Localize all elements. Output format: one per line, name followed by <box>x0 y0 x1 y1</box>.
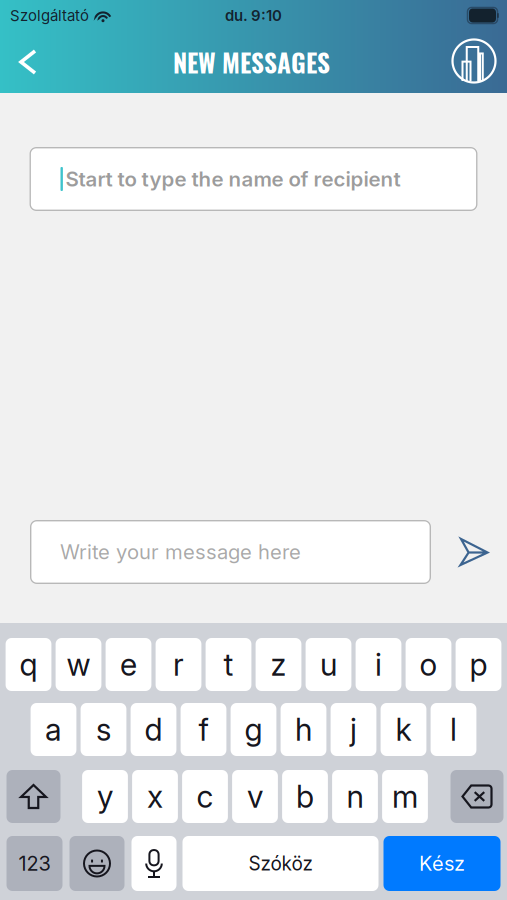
button[interactable]: Back <box>0 31 56 93</box>
button[interactable]: 123 <box>6 836 62 891</box>
staticText: y <box>97 778 113 815</box>
staticText: Start to type the name of recipient <box>65 167 400 191</box>
staticText: v <box>247 778 263 815</box>
staticText: a <box>45 711 62 748</box>
button[interactable]: h <box>281 703 326 756</box>
button[interactable]: t <box>206 638 251 691</box>
staticText: p <box>469 646 487 683</box>
staticText: w <box>66 646 90 683</box>
staticText: u <box>320 646 337 683</box>
staticText: g <box>244 711 262 748</box>
staticText: x <box>147 778 163 815</box>
button[interactable]: Emoji <box>69 836 124 891</box>
staticText: o <box>419 646 437 683</box>
staticText: j <box>350 711 357 748</box>
button[interactable]: b <box>282 770 328 823</box>
staticText: du. 9:10 <box>225 6 282 25</box>
button[interactable]: v <box>232 770 278 823</box>
staticText: Szóköz <box>248 852 312 875</box>
staticText: Write your message here <box>60 540 301 564</box>
staticText: f <box>198 711 208 748</box>
button[interactable]: n <box>332 770 378 823</box>
button[interactable]: Send <box>453 520 499 584</box>
button[interactable]: c <box>182 770 228 823</box>
button[interactable]: Shift <box>6 770 60 823</box>
button[interactable]: Kész <box>383 836 500 891</box>
staticText: s <box>96 711 111 748</box>
button[interactable]: q <box>6 638 51 691</box>
button[interactable]: k <box>381 703 426 756</box>
staticText: NEW MESSAGES <box>173 43 330 81</box>
button[interactable]: Szóköz <box>182 836 378 891</box>
button[interactable]: m <box>382 770 428 823</box>
staticText: 123 <box>18 851 50 876</box>
button[interactable]: r <box>156 638 201 691</box>
staticText: h <box>295 711 312 748</box>
staticText: t <box>223 646 233 683</box>
button[interactable]: App logo <box>447 31 507 93</box>
button[interactable]: p <box>456 638 501 691</box>
button[interactable]: a <box>31 703 76 756</box>
button[interactable]: Backspace <box>450 770 503 823</box>
button[interactable]: o <box>406 638 451 691</box>
staticText: l <box>450 711 457 748</box>
button[interactable]: i <box>356 638 401 691</box>
staticText: i <box>375 646 382 683</box>
button[interactable]: l <box>431 703 476 756</box>
staticText: k <box>395 711 411 748</box>
button[interactable]: j <box>331 703 376 756</box>
staticText: m <box>392 778 418 815</box>
staticText: e <box>120 646 137 683</box>
staticText: c <box>196 778 213 815</box>
button[interactable]: e <box>106 638 151 691</box>
staticText: z <box>270 646 286 683</box>
staticText: Kész <box>419 851 465 876</box>
button[interactable]: z <box>256 638 301 691</box>
button[interactable]: Write your message here <box>30 520 431 584</box>
button[interactable]: Start to type the name of recipient <box>29 147 477 211</box>
button[interactable]: f <box>181 703 226 756</box>
button[interactable]: w <box>56 638 101 691</box>
button[interactable]: u <box>306 638 351 691</box>
staticText: q <box>19 646 37 683</box>
staticText: b <box>296 778 314 815</box>
button[interactable]: x <box>132 770 178 823</box>
button[interactable]: g <box>231 703 276 756</box>
button[interactable]: d <box>131 703 176 756</box>
button[interactable]: Dictate <box>131 836 176 891</box>
staticText: d <box>144 711 162 748</box>
staticText: n <box>346 778 363 815</box>
button[interactable]: y <box>82 770 128 823</box>
staticText: Szolgáltató <box>10 6 89 25</box>
staticText: r <box>173 646 184 683</box>
button[interactable]: s <box>81 703 126 756</box>
